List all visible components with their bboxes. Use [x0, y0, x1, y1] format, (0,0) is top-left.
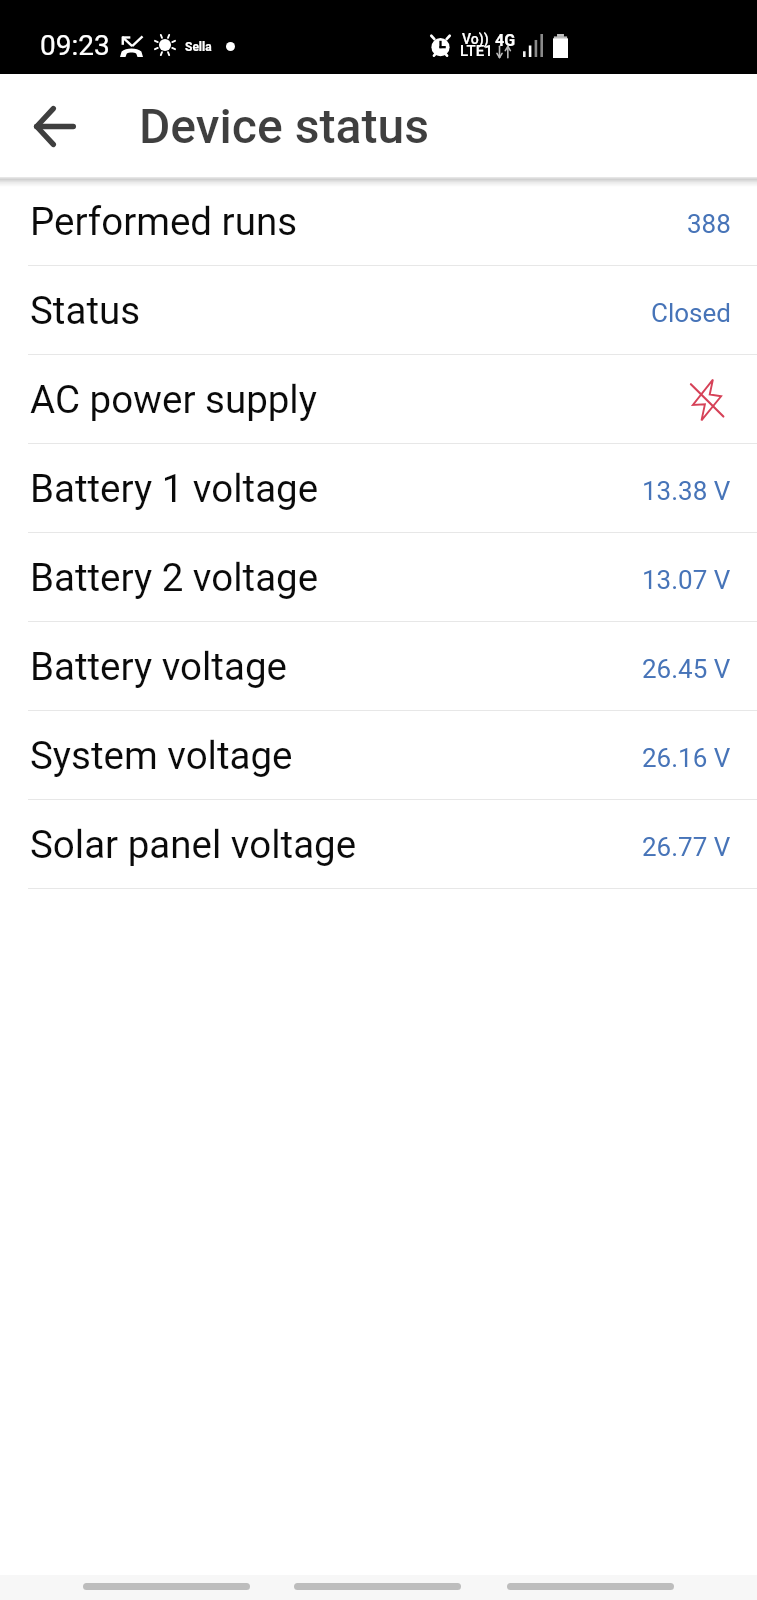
staticText: Battery voltage — [30, 644, 287, 689]
button[interactable]: AC power supply — [0, 355, 757, 444]
staticText: 26.16 V — [642, 743, 731, 773]
button[interactable]: Home — [294, 1583, 461, 1590]
staticText: LTE1 — [460, 42, 493, 60]
button[interactable]: Recent apps — [83, 1583, 250, 1590]
staticText: Solar panel voltage — [30, 822, 357, 867]
staticText: Closed — [651, 298, 731, 328]
button[interactable]: Back — [20, 91, 90, 161]
staticText: AC power supply — [30, 377, 317, 422]
button[interactable]: Solar panel voltage — [0, 800, 757, 889]
staticText: 388 — [687, 209, 731, 239]
staticText: 13.07 V — [642, 565, 731, 595]
button[interactable]: AC power not connected — [675, 374, 731, 430]
staticText: Vo)) — [462, 31, 489, 47]
staticText: 09:23 — [40, 29, 110, 62]
staticText: Battery 2 voltage — [30, 555, 319, 600]
staticText: Status — [30, 288, 141, 333]
button[interactable]: Performed runs — [0, 177, 757, 266]
staticText: 4G — [495, 31, 516, 50]
staticText: Performed runs — [30, 199, 298, 244]
staticText: Device status — [139, 98, 429, 154]
button[interactable]: Battery 2 voltage — [0, 533, 757, 622]
staticText: 13.38 V — [642, 476, 731, 506]
button[interactable]: Status — [0, 266, 757, 355]
staticText: 26.77 V — [642, 832, 731, 862]
staticText: Battery 1 voltage — [30, 466, 319, 511]
staticText: System voltage — [30, 733, 293, 778]
button[interactable]: Back — [507, 1583, 674, 1590]
button[interactable]: System voltage — [0, 711, 757, 800]
staticText: 26.45 V — [642, 654, 731, 684]
button[interactable]: Battery 1 voltage — [0, 444, 757, 533]
staticText: Sella — [185, 40, 212, 54]
button[interactable]: Battery voltage — [0, 622, 757, 711]
